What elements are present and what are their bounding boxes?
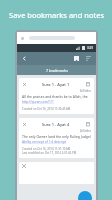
button[interactable]: Delete: [85, 81, 91, 87]
staticText: All the praises and thanks be to Allah, …: [22, 94, 91, 99]
staticText: Al-Fatiha: [80, 89, 91, 93]
staticText: The only Owner (and the only Ruling Judg…: [22, 134, 91, 139]
staticText: Created on Oct 16, 2014 11:31:10 AM: [22, 147, 71, 151]
staticText: Sura 1 - Ayat 1: [42, 82, 70, 87]
button[interactable]: Bookmarks: [72, 54, 81, 63]
button[interactable]: [19, 162, 94, 184]
button[interactable]: http://quran.com/1/1: [22, 100, 54, 104]
button[interactable]: Close: [22, 122, 27, 127]
button[interactable]: Back: [20, 54, 29, 63]
button[interactable]: Sort: [84, 54, 93, 63]
button[interactable]: Close: [19, 118, 94, 158]
button[interactable]: Delete: [85, 121, 91, 127]
staticText: 7 bookmarks: [46, 68, 68, 73]
button[interactable]: Close: [22, 82, 27, 87]
button[interactable]: Add bookmark: [78, 191, 92, 200]
staticText: Created on Oct 16, 2014 11:30:45 AM: [22, 107, 71, 111]
staticText: Save bookmarks and notes: [9, 10, 104, 20]
button[interactable]: Ability concept of 1:4 descript: [22, 140, 67, 144]
button[interactable]: Close: [19, 78, 94, 114]
staticText: Last modified on Oct 17, 2014 2:01:44 PM: [22, 151, 77, 155]
staticText: 3:29: [87, 46, 93, 50]
staticText: Sura 1 - Ayat 4: [42, 122, 70, 127]
staticText: Al-Fatiha: [80, 129, 91, 133]
